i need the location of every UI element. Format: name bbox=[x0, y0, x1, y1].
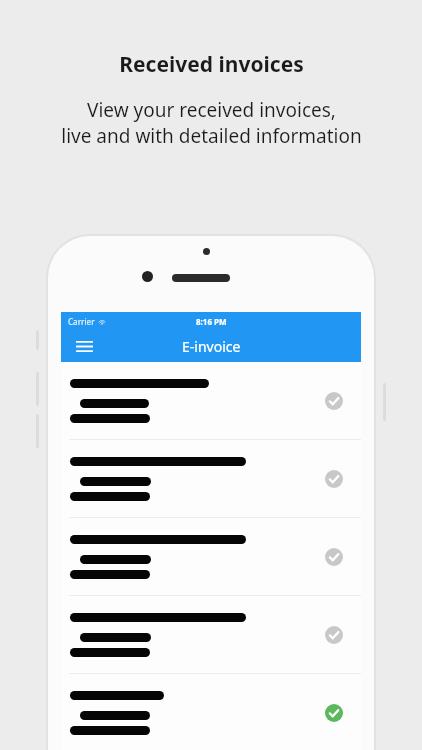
other: Pending bbox=[325, 626, 343, 644]
button[interactable]: Pending bbox=[61, 518, 361, 595]
staticText: View your received invoices, live and wi… bbox=[61, 97, 362, 148]
staticText: E-invoice bbox=[182, 337, 241, 356]
button[interactable]: Open navigation menu bbox=[71, 333, 97, 359]
other: Pending bbox=[325, 470, 343, 488]
other: Pending bbox=[325, 548, 343, 566]
button[interactable]: Pending bbox=[61, 440, 361, 517]
staticText: Carrier bbox=[68, 316, 95, 327]
staticText: Received invoices bbox=[119, 50, 304, 79]
button[interactable]: Pending bbox=[61, 596, 361, 673]
other: Pending bbox=[325, 392, 343, 410]
staticText: 8:16 PM bbox=[196, 316, 227, 327]
button[interactable]: Paid bbox=[61, 674, 361, 750]
button[interactable]: Pending bbox=[61, 362, 361, 439]
other: Paid bbox=[325, 704, 343, 722]
